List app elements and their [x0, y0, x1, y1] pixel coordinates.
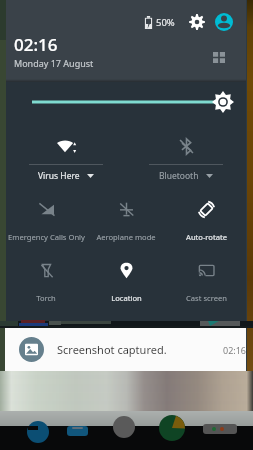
button[interactable]: User profile: [213, 11, 235, 33]
button[interactable]: Aeroplane mode: [86, 187, 166, 242]
button[interactable]: Edit tiles: [206, 45, 231, 70]
button[interactable]: Brightness: [6, 82, 246, 122]
button[interactable]: Torch: [6, 248, 86, 303]
staticText: 02:16: [223, 344, 247, 356]
button[interactable]: Cast screen: [166, 248, 246, 303]
staticText: Aeroplane mode: [96, 232, 156, 242]
staticText: Virus Here: [38, 170, 80, 182]
button[interactable]: Emergency Calls Only: [6, 187, 86, 242]
button[interactable]: Bluetooth: [126, 122, 246, 182]
button[interactable]: 02:16: [14, 33, 94, 69]
staticText: 02:16: [14, 33, 58, 56]
button[interactable]: Location: [86, 248, 166, 303]
button[interactable]: Auto-rotate: [166, 187, 246, 242]
button[interactable]: Virus Here: [6, 122, 126, 182]
staticText: Auto-rotate: [186, 232, 227, 242]
staticText: Location: [111, 293, 142, 303]
staticText: 50%: [156, 16, 175, 29]
staticText: Bluetooth: [159, 170, 199, 182]
staticText: Monday 17 August: [14, 57, 94, 69]
staticText: Emergency Calls Only: [8, 232, 85, 242]
staticText: Cast screen: [186, 293, 227, 303]
button[interactable]: Settings: [186, 11, 208, 33]
staticText: Torch: [36, 293, 56, 303]
staticText: Screenshot captured.: [57, 342, 167, 357]
button[interactable]: Screenshot captured.: [5, 328, 246, 371]
